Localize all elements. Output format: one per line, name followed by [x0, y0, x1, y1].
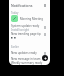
button[interactable]: Weekly summary ready — [9, 61, 50, 65]
staticText: Install tonight — [11, 28, 30, 32]
button[interactable]: New updates ready — [9, 51, 50, 56]
staticText: New trending page tip — [11, 32, 41, 36]
staticText: Earlier — [11, 45, 19, 49]
button[interactable]: Notifications — [9, 0, 50, 10]
staticText: System update ready — [11, 24, 40, 28]
button[interactable]: Compose — [42, 55, 48, 61]
button[interactable]: Morning Meeting — [9, 15, 50, 22]
button[interactable]: Options — [42, 25, 47, 30]
button[interactable]: New trending page tip — [9, 32, 50, 40]
staticText: Morning Meeting — [20, 17, 43, 21]
staticText: Weekly summary ready — [11, 61, 43, 65]
staticText: New message in team — [11, 57, 41, 61]
staticText: New updates ready — [11, 51, 37, 55]
button[interactable]: New message in team — [9, 57, 50, 62]
staticText: Today — [11, 11, 19, 15]
staticText: Notifications — [11, 3, 33, 8]
button[interactable]: Options — [42, 32, 47, 37]
button[interactable]: More options — [42, 3, 47, 8]
button[interactable]: Options — [42, 51, 47, 56]
button[interactable]: System update ready — [9, 24, 50, 32]
